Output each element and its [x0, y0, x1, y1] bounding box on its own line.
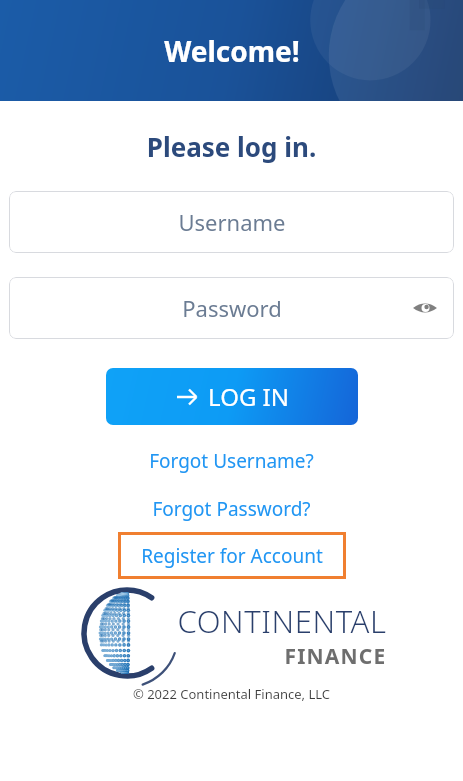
staticText: Forgot Password?: [152, 496, 311, 522]
button[interactable]: Username: [9, 191, 454, 253]
staticText: LOG IN: [208, 380, 289, 413]
button[interactable]: Forgot Username?: [149, 448, 314, 474]
staticText: © 2022 Continental Finance, LLC: [0, 685, 463, 703]
staticText: CONTINENTAL: [177, 600, 387, 642]
staticText: FINANCE: [284, 642, 387, 671]
button[interactable]: Forgot Password?: [152, 496, 311, 522]
staticText: Please log in.: [0, 129, 463, 164]
staticText: Username: [178, 207, 286, 237]
staticText: Welcome!: [164, 32, 300, 70]
button[interactable]: Register for Account: [118, 532, 346, 579]
button[interactable]: Show password: [408, 291, 442, 325]
staticText: Password: [182, 293, 282, 323]
staticText: Register for Account: [141, 543, 323, 569]
button[interactable]: Password: [9, 277, 454, 339]
button[interactable]: LOG IN: [106, 368, 358, 425]
staticText: Forgot Username?: [149, 448, 314, 474]
